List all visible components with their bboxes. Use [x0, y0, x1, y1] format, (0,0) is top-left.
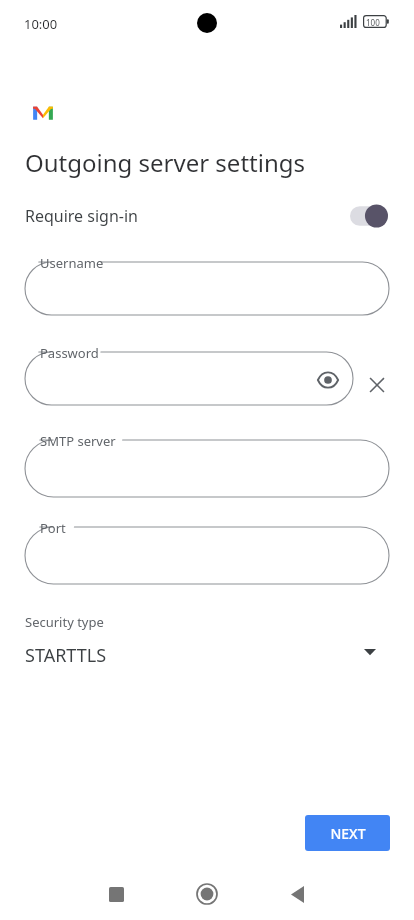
button[interactable]: SMTP server [25, 440, 389, 497]
button[interactable]: Require sign-in [0, 196, 414, 236]
button[interactable]: Home [187, 874, 227, 914]
staticText: NEXT [330, 824, 366, 843]
staticText: SMTP server [40, 432, 116, 450]
button[interactable]: Back [277, 874, 317, 914]
staticText: Port [40, 519, 66, 537]
staticText: Security type [25, 613, 104, 631]
staticText: 100 [366, 17, 380, 28]
button[interactable]: Username [25, 262, 389, 315]
staticText: STARTTLS [25, 643, 107, 668]
staticText: Username [40, 254, 104, 272]
staticText: 10:00 [24, 15, 58, 33]
staticText: Outgoing server settings [25, 146, 306, 179]
button[interactable]: Recent apps [96, 874, 136, 914]
button[interactable]: Port [25, 527, 389, 584]
staticText: Require sign-in [25, 205, 138, 227]
button[interactable]: Require sign-in toggle [350, 204, 388, 228]
button[interactable]: Security type [0, 608, 414, 670]
button[interactable]: Show password [312, 364, 344, 396]
button[interactable]: Password [25, 352, 353, 405]
button[interactable]: NEXT [305, 815, 390, 851]
button[interactable]: Clear [361, 369, 393, 401]
staticText: Password [40, 344, 99, 362]
